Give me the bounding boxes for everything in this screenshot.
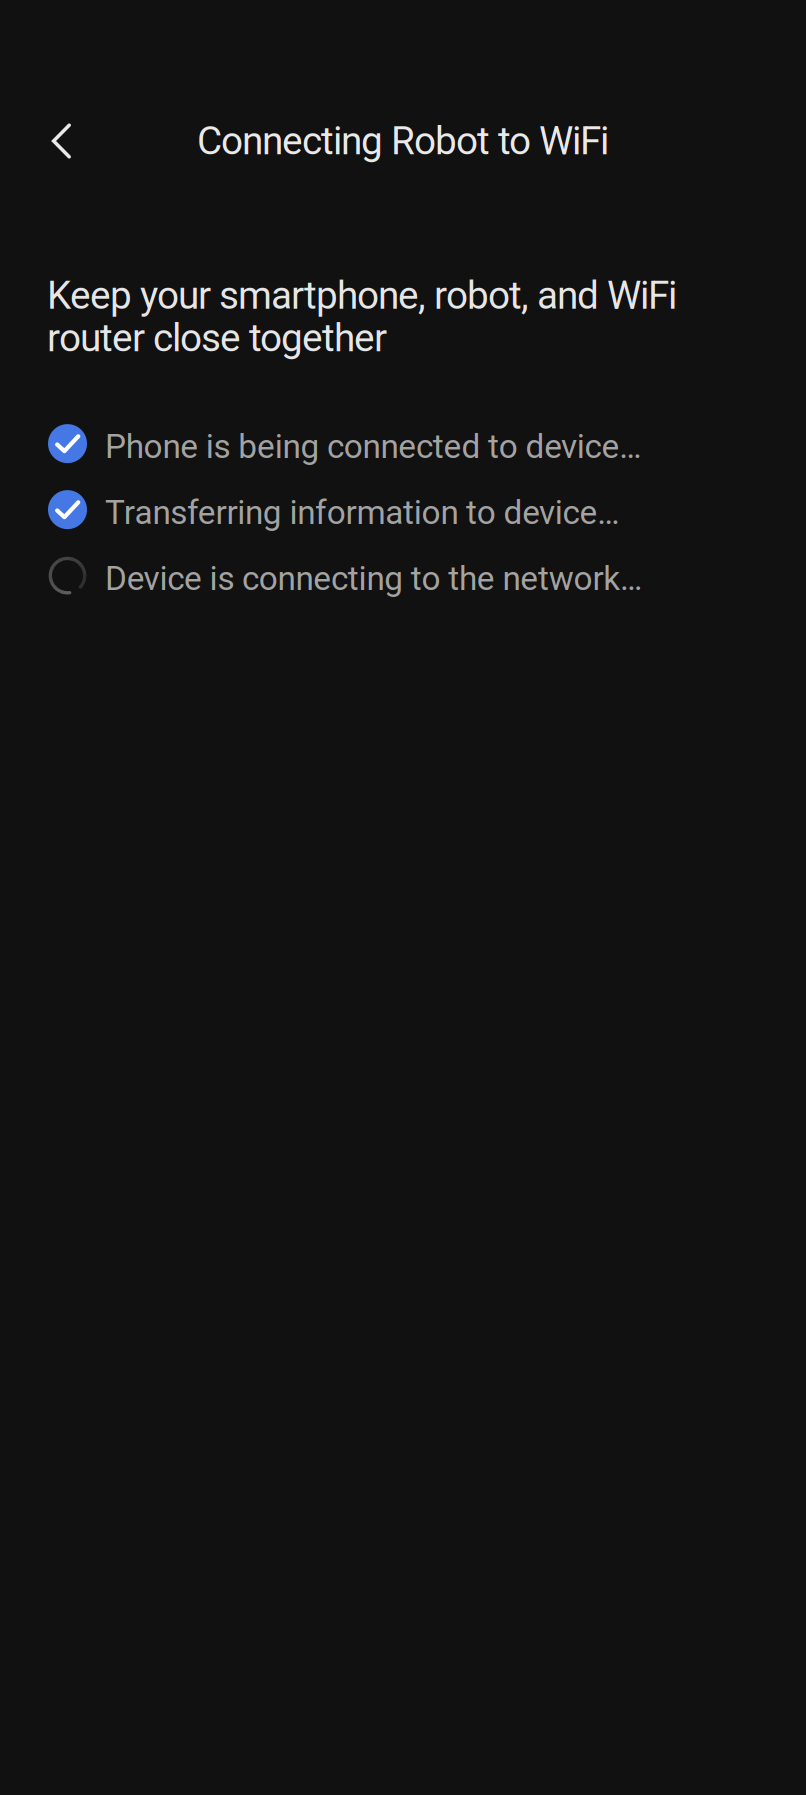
staticText: Connecting Robot to WiFi xyxy=(197,118,609,164)
button[interactable]: Transferring information to device… xyxy=(48,480,758,546)
button[interactable]: Phone is being connected to device… xyxy=(48,414,758,480)
button[interactable]: Back xyxy=(0,103,123,179)
staticText: Keep your smartphone, robot, and WiFi ro… xyxy=(47,273,677,361)
button[interactable]: Device is connecting to the network… xyxy=(48,546,758,612)
staticText: Phone is being connected to device… xyxy=(105,427,641,466)
staticText: Transferring information to device… xyxy=(105,493,619,532)
staticText: Device is connecting to the network… xyxy=(105,559,642,598)
